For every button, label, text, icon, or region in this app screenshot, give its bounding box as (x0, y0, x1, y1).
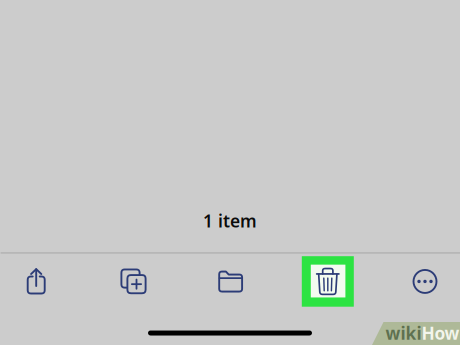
staticText: How (421, 321, 459, 344)
button[interactable]: Delete (293, 253, 363, 309)
button[interactable]: Move to folder (195, 253, 266, 309)
button[interactable]: More (390, 253, 460, 309)
staticText: wiki (385, 321, 421, 344)
button[interactable]: Duplicate (98, 253, 169, 309)
button[interactable]: Share (1, 253, 71, 309)
staticText: 1 item (203, 209, 257, 232)
